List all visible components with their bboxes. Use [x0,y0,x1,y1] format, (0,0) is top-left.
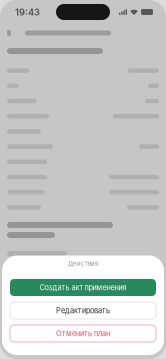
button[interactable]: Редактировать [10,302,156,319]
staticText: Редактировать [56,306,110,315]
staticText: 19:43 [15,6,40,18]
staticText: Отменить план [56,329,110,338]
button[interactable]: Отменить план [10,325,156,342]
button[interactable]: Создать акт применения [10,279,156,296]
staticText: Действия [68,260,98,267]
staticText: Создать акт применения [39,283,126,292]
